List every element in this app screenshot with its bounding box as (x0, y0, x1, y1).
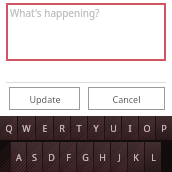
button[interactable]: R (54, 116, 70, 140)
button[interactable]: K (128, 142, 144, 172)
staticText: Update (29, 93, 61, 105)
button[interactable]: Cancel (88, 87, 165, 110)
button[interactable]: Q (0, 116, 17, 140)
staticText: H (99, 151, 106, 163)
button[interactable]: T (71, 116, 87, 140)
staticText: O (143, 122, 151, 134)
button[interactable]: U (105, 116, 121, 140)
button[interactable]: I (122, 116, 138, 140)
staticText: T (76, 122, 82, 134)
button[interactable]: O (139, 116, 155, 140)
button[interactable]: W (18, 116, 35, 140)
staticText: J (118, 151, 121, 163)
staticText: E (42, 122, 48, 134)
staticText: P (161, 122, 167, 134)
button[interactable]: G (77, 142, 93, 172)
staticText: F (66, 151, 71, 163)
button[interactable]: J (111, 142, 127, 172)
staticText: I (128, 122, 132, 134)
staticText: G (82, 151, 89, 163)
staticText: D (48, 151, 55, 163)
button[interactable]: F (60, 142, 76, 172)
button[interactable]: Y (88, 116, 104, 140)
staticText: A (16, 151, 22, 163)
button[interactable]: H (94, 142, 110, 172)
staticText: What's happening? (10, 6, 100, 20)
button[interactable]: Status text field (6, 3, 166, 61)
staticText: Cancel (112, 93, 141, 105)
staticText: Q (5, 122, 13, 134)
staticText: W (22, 122, 31, 134)
button[interactable]: A (11, 142, 26, 172)
button[interactable]: Update (9, 87, 80, 110)
staticText: Y (93, 122, 99, 134)
button[interactable]: E (36, 116, 53, 140)
button[interactable]: L (145, 142, 161, 172)
staticText: K (133, 151, 139, 163)
button[interactable]: D (43, 142, 59, 172)
staticText: R (59, 122, 65, 134)
staticText: L (151, 151, 156, 163)
button[interactable]: S (27, 142, 42, 172)
staticText: U (110, 122, 117, 134)
staticText: S (32, 151, 37, 163)
button[interactable]: P (156, 116, 172, 140)
